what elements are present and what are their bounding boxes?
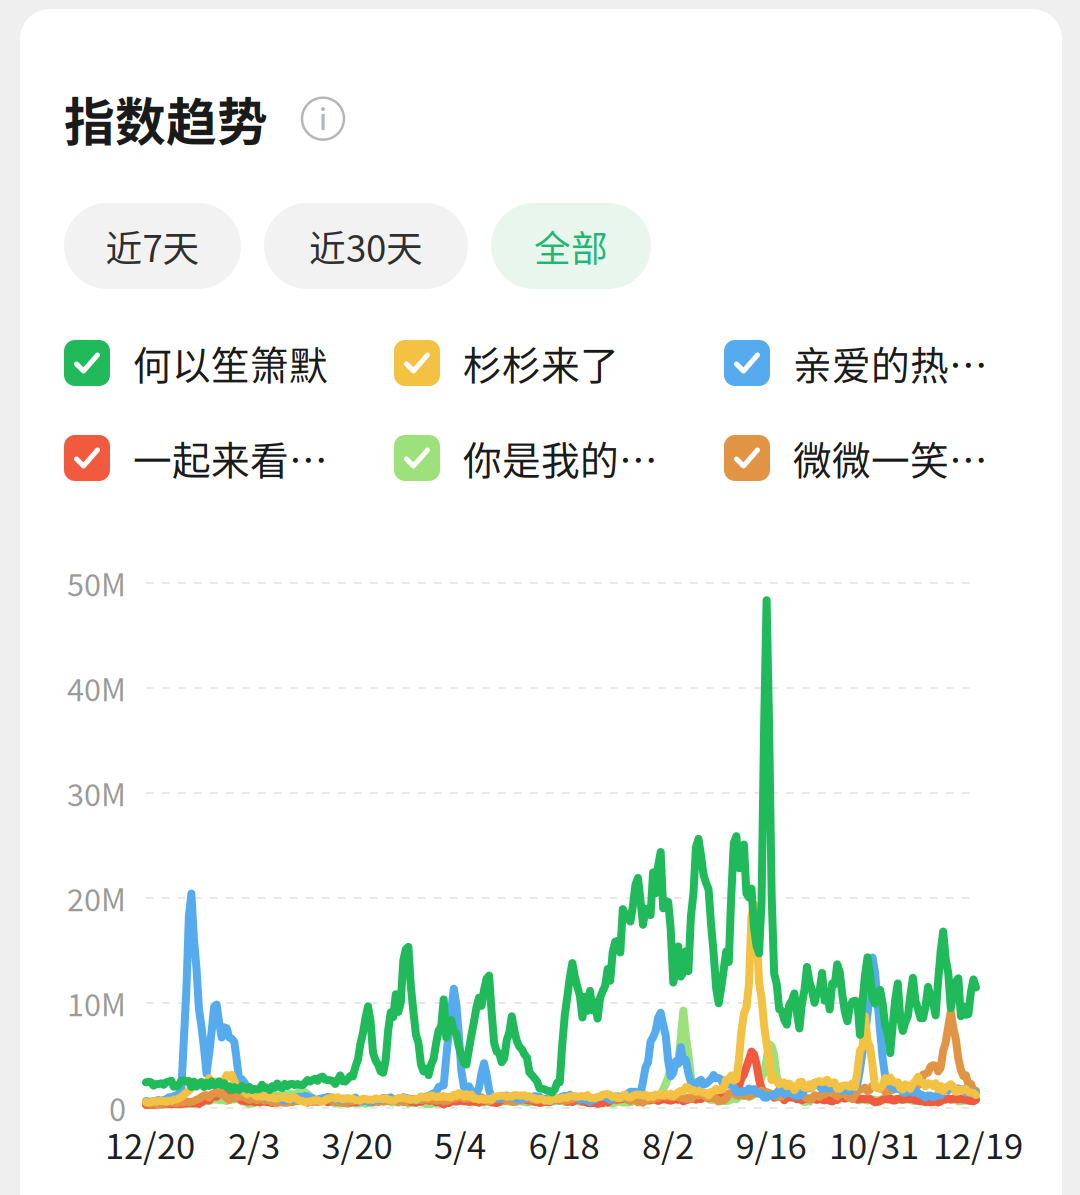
staticText: 50M bbox=[67, 561, 126, 605]
staticText: 全部 bbox=[534, 219, 608, 273]
button[interactable]: 一起来看… bbox=[64, 430, 394, 486]
staticText: 亲爱的热… bbox=[793, 335, 988, 391]
staticText: 9/16 bbox=[735, 1119, 806, 1169]
staticText: 近7天 bbox=[105, 219, 199, 273]
staticText: i bbox=[319, 97, 327, 138]
button[interactable]: 杉杉来了 bbox=[394, 335, 724, 391]
button[interactable]: 近30天 bbox=[264, 203, 468, 289]
staticText: 3/20 bbox=[321, 1119, 392, 1169]
button[interactable]: 何以笙箫默 bbox=[64, 335, 394, 391]
button[interactable]: 近7天 bbox=[64, 203, 241, 289]
staticText: 你是我的… bbox=[463, 430, 658, 486]
staticText: 2/3 bbox=[228, 1119, 280, 1169]
staticText: 近30天 bbox=[309, 219, 423, 273]
staticText: 何以笙箫默 bbox=[133, 335, 328, 391]
staticText: 10/31 bbox=[829, 1119, 919, 1169]
button[interactable]: 亲爱的热… bbox=[724, 335, 1054, 391]
staticText: 12/20 bbox=[105, 1119, 195, 1169]
staticText: 12/19 bbox=[933, 1119, 1023, 1169]
staticText: 杉杉来了 bbox=[463, 335, 619, 391]
staticText: 5/4 bbox=[434, 1119, 486, 1169]
staticText: 30M bbox=[67, 771, 126, 815]
staticText: 20M bbox=[67, 876, 126, 920]
button[interactable]: Info bbox=[300, 96, 346, 142]
button[interactable]: 全部 bbox=[491, 203, 651, 289]
staticText: 10M bbox=[67, 981, 126, 1025]
staticText: 微微一笑… bbox=[793, 430, 988, 486]
button[interactable]: 微微一笑… bbox=[724, 430, 1054, 486]
staticText: 0 bbox=[109, 1086, 126, 1130]
staticText: 一起来看… bbox=[133, 430, 328, 486]
staticText: 指数趋势 bbox=[64, 82, 268, 155]
staticText: 40M bbox=[67, 666, 126, 710]
staticText: 8/2 bbox=[642, 1119, 694, 1169]
staticText: 6/18 bbox=[528, 1119, 599, 1169]
button[interactable]: 你是我的… bbox=[394, 430, 724, 486]
